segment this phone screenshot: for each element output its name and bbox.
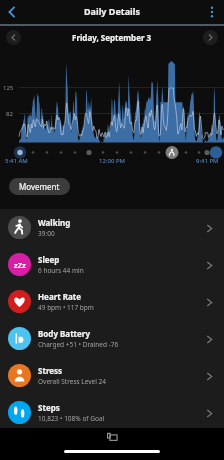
staticText: Daily Details	[84, 5, 140, 17]
staticText: 12:00 PM	[99, 157, 125, 165]
button[interactable]: Back	[0, 0, 24, 24]
staticText: Overall Stress Level 24	[38, 377, 107, 386]
staticText: Friday, September 3	[72, 32, 152, 43]
button[interactable]: zZz	[0, 246, 224, 283]
button[interactable]: Body Battery	[0, 320, 224, 357]
button[interactable]: Steps	[0, 394, 224, 431]
staticText: 49 bpm • 117 bpm	[38, 303, 94, 312]
button[interactable]: More options	[200, 0, 224, 24]
button[interactable]: Walking	[0, 209, 224, 246]
staticText: Body Battery	[38, 328, 90, 339]
staticText: 82	[6, 110, 13, 118]
staticText: Charged +51 • Drained -76	[38, 340, 119, 349]
staticText: Movement	[19, 181, 60, 192]
button[interactable]: Previous day	[6, 30, 21, 45]
staticText: Sleep	[38, 254, 60, 265]
button[interactable]: Recent apps	[106, 431, 119, 444]
staticText: 5:41 AM	[5, 157, 28, 165]
staticText: Stress	[38, 365, 63, 376]
staticText: 39:00	[38, 229, 55, 238]
button[interactable]: Stress	[0, 357, 224, 394]
button[interactable]: Next day	[203, 30, 218, 45]
staticText: 6 hours 44 min	[38, 266, 84, 275]
staticText: zZz	[14, 260, 26, 270]
button[interactable]: Heart Rate	[0, 283, 224, 320]
staticText: Steps	[38, 402, 60, 413]
button[interactable]: Movement	[9, 178, 70, 195]
staticText: Walking	[38, 217, 71, 228]
staticText: 125	[3, 84, 14, 92]
staticText: Heart Rate	[38, 291, 82, 302]
staticText: 10,823 • 108% of Goal	[38, 414, 105, 423]
staticText: 9:41 PM	[196, 157, 219, 165]
